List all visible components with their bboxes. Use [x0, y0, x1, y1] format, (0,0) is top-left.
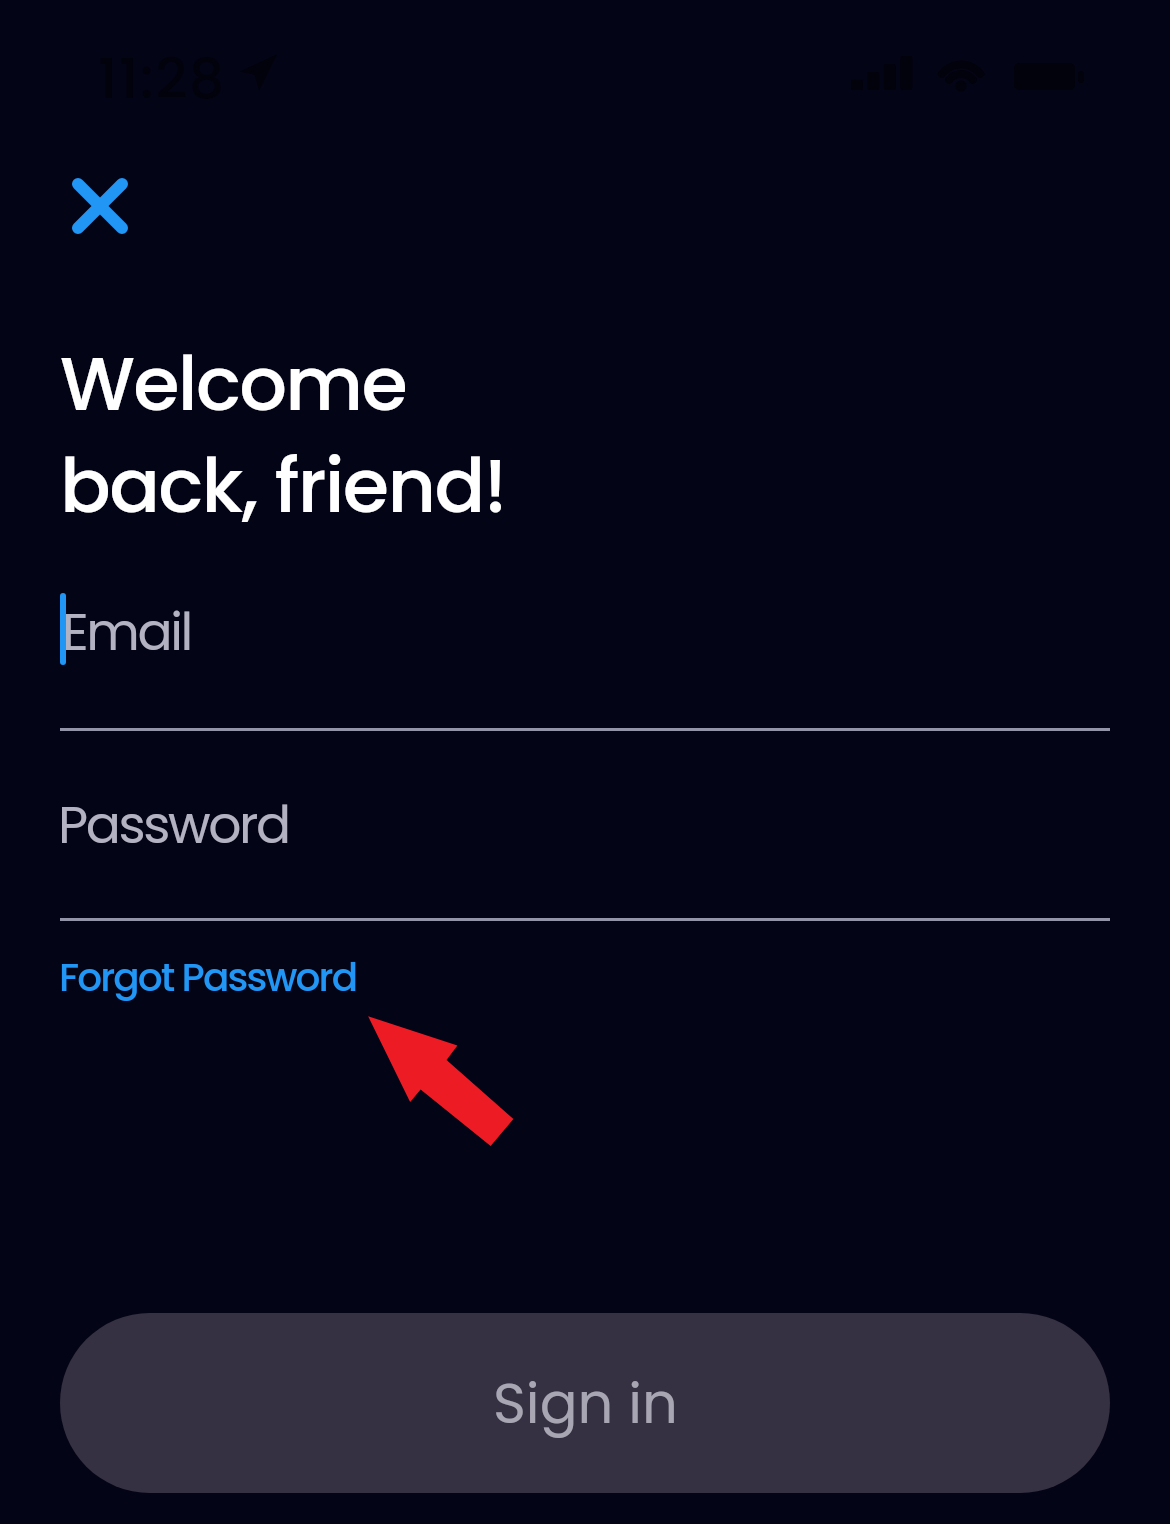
staticText: Forgot Password: [59, 950, 357, 1005]
button[interactable]: Email: [60, 577, 1110, 731]
staticText: Sign in: [493, 1364, 678, 1442]
button[interactable]: Forgot Password: [59, 942, 357, 1013]
button[interactable]: Sign in: [60, 1313, 1110, 1493]
button[interactable]: Password: [60, 768, 1110, 921]
staticText: Welcome: [60, 331, 407, 436]
staticText: Email: [62, 595, 191, 668]
staticText: back, friend!: [60, 433, 506, 538]
staticText: Password: [58, 788, 289, 861]
staticText: 11:28: [98, 40, 226, 117]
button[interactable]: Close: [46, 152, 154, 260]
